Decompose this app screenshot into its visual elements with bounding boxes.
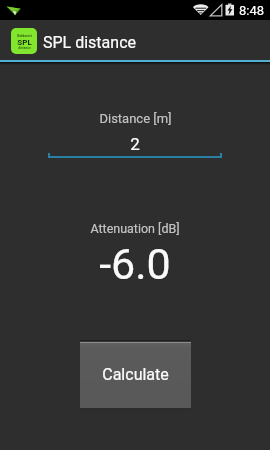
staticText: Bakkenist (17, 34, 32, 38)
other: Notification (0, 0, 270, 20)
staticText: 2 (130, 134, 140, 154)
staticText: 8:48 (239, 3, 265, 18)
staticText: Attenuation [dB] (90, 221, 180, 236)
staticText: Distance [m] (99, 111, 172, 126)
button[interactable]: Bakkenist (0, 20, 270, 60)
staticText: SPL (17, 38, 32, 47)
staticText: -6.0 (99, 239, 171, 289)
staticText: Calculate (102, 365, 169, 384)
button[interactable]: Calculate (80, 340, 191, 413)
staticText: distance (18, 46, 31, 50)
staticText: SPL distance (43, 33, 136, 52)
